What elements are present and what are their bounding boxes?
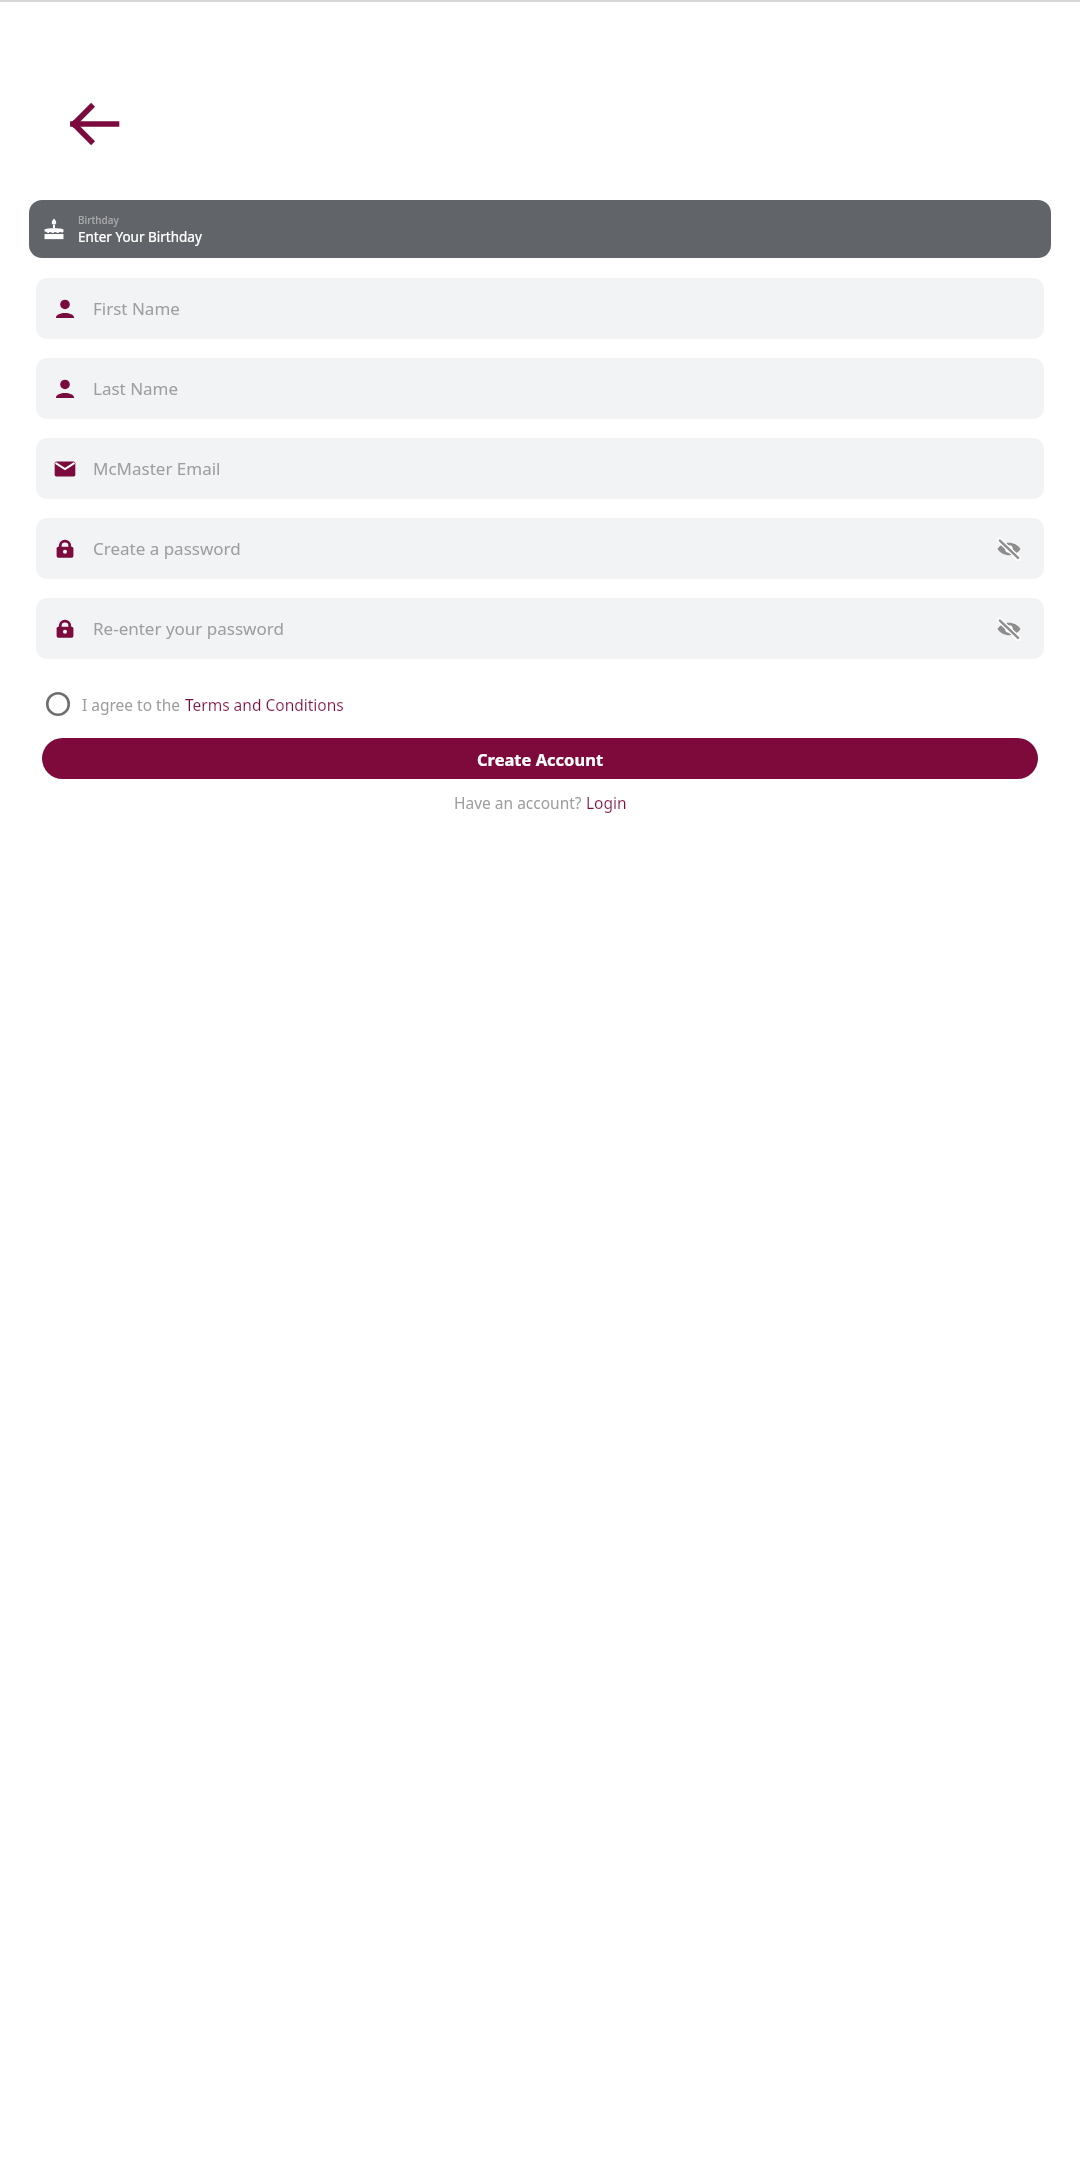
button[interactable]: Show password <box>994 534 1024 564</box>
button[interactable]: Have an account? <box>454 792 627 813</box>
button[interactable]: Last Name <box>36 358 1044 419</box>
staticText: Have an account? <box>454 792 586 813</box>
staticText: Enter Your Birthday <box>78 228 202 246</box>
button[interactable]: First Name <box>36 278 1044 339</box>
staticText: Login <box>586 792 627 813</box>
button[interactable]: Re-enter your password <box>36 598 1044 659</box>
button[interactable]: McMaster Email <box>36 438 1044 499</box>
staticText: Create Account <box>477 748 604 770</box>
button[interactable]: Create Account <box>42 738 1038 779</box>
staticText: I agree to the <box>82 694 185 715</box>
button[interactable]: Back <box>60 90 128 158</box>
staticText: Last Name <box>93 377 1024 400</box>
staticText: Create a password <box>93 537 994 560</box>
button[interactable]: Create a password <box>36 518 1044 579</box>
button[interactable]: I agree to the <box>45 691 344 717</box>
button[interactable]: Birthday <box>29 200 1051 258</box>
button[interactable]: Show password <box>994 614 1024 644</box>
staticText: McMaster Email <box>93 457 1024 480</box>
staticText: Birthday <box>78 213 119 227</box>
staticText: Re-enter your password <box>93 617 994 640</box>
staticText: Terms and Conditions <box>185 694 344 715</box>
staticText: First Name <box>93 297 1024 320</box>
